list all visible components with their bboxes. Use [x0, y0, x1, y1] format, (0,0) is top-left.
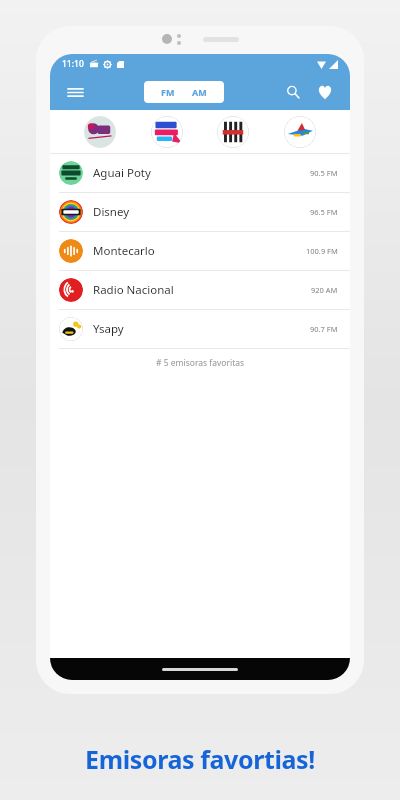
button[interactable]: Montecarlo	[50, 232, 350, 270]
staticText: Emisoras favortias!	[0, 742, 400, 776]
button[interactable]: Favorites	[312, 79, 338, 105]
staticText: 96.5 FM	[310, 207, 338, 217]
staticText: FM	[161, 86, 175, 98]
button[interactable]: Radio Plane	[284, 116, 316, 148]
button[interactable]: Radio 103.7	[151, 116, 183, 148]
staticText: Montecarlo	[93, 243, 306, 259]
staticText: 100.9 FM	[306, 246, 338, 256]
button[interactable]: Radio 100	[217, 116, 249, 148]
staticText: # 5 emisoras favoritas	[156, 357, 245, 369]
staticText: Aguai Poty	[93, 165, 310, 181]
staticText: 90.7 FM	[310, 324, 338, 334]
button[interactable]: Search	[280, 79, 306, 105]
staticText: 11:10	[62, 58, 84, 70]
staticText: AM	[192, 86, 207, 98]
button[interactable]: Ysapy	[50, 310, 350, 348]
button[interactable]: Radio 97	[84, 116, 116, 148]
staticText: Radio Nacional	[93, 282, 311, 298]
staticText: Disney	[93, 204, 310, 220]
staticText: 920 AM	[311, 285, 338, 295]
staticText: 90.5 FM	[310, 168, 338, 178]
button[interactable]: Menu	[62, 79, 88, 105]
button[interactable]: Aguai Poty	[50, 154, 350, 192]
staticText: Ysapy	[93, 321, 310, 337]
button[interactable]: FM	[144, 81, 224, 103]
button[interactable]: Radio Nacional	[50, 271, 350, 309]
button[interactable]: Disney	[50, 193, 350, 231]
